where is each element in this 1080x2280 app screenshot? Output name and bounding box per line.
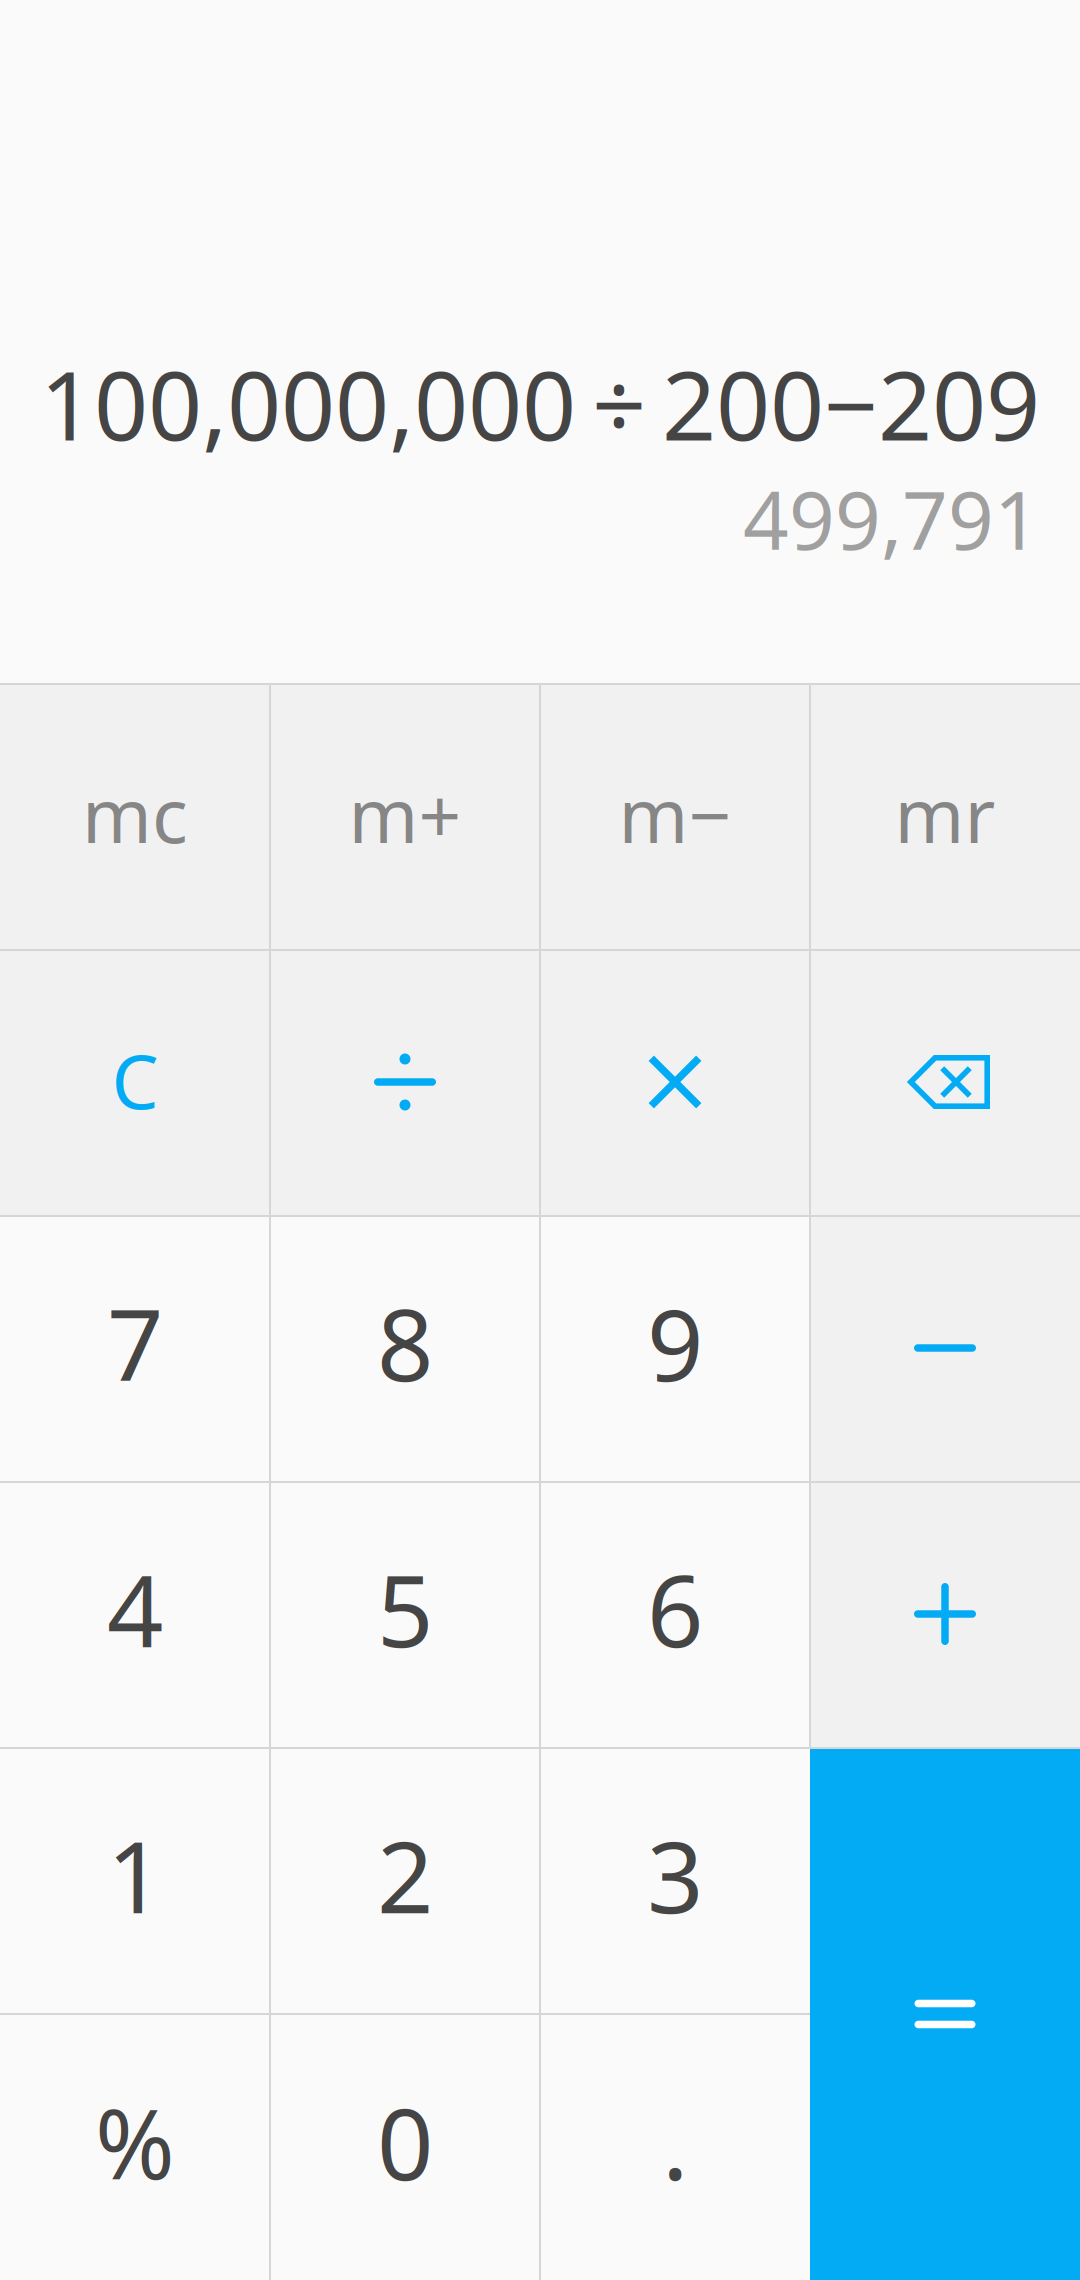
button[interactable]: m+ <box>270 683 540 949</box>
button[interactable]: 3 <box>540 1747 810 2013</box>
button[interactable]: Multiply <box>540 949 810 1215</box>
staticText: C <box>111 1030 158 1130</box>
button[interactable]: . <box>540 2013 810 2280</box>
button[interactable]: 0 <box>270 2013 540 2280</box>
staticText: 1 <box>107 1809 163 1940</box>
staticText: 100,000,000 ÷ 200−209 <box>40 341 1040 467</box>
staticText: 6 <box>647 1543 703 1674</box>
staticText: . <box>662 2076 688 2207</box>
staticText: m− <box>618 764 731 864</box>
button[interactable]: 1 <box>0 1747 270 2013</box>
button[interactable]: 4 <box>0 1481 270 1747</box>
staticText: 0 <box>377 2076 433 2207</box>
staticText: % <box>95 2078 175 2206</box>
staticText: 7 <box>107 1277 163 1408</box>
staticText: 5 <box>377 1543 433 1674</box>
button[interactable]: 8 <box>270 1215 540 1481</box>
staticText: 2 <box>377 1809 433 1940</box>
button[interactable]: 6 <box>540 1481 810 1747</box>
button[interactable]: Plus <box>810 1481 1080 1747</box>
button[interactable]: % <box>0 2013 270 2280</box>
button[interactable]: 2 <box>270 1747 540 2013</box>
staticText: 9 <box>647 1277 703 1408</box>
staticText: mr <box>894 764 995 864</box>
button[interactable]: mr <box>810 683 1080 949</box>
staticText: mc <box>82 764 188 864</box>
staticText: 499,791 <box>743 466 1040 572</box>
button[interactable]: C <box>0 949 270 1215</box>
button[interactable]: Backspace <box>810 949 1080 1215</box>
staticText: 4 <box>107 1543 163 1674</box>
staticText: 3 <box>647 1809 703 1940</box>
button[interactable]: Minus <box>810 1215 1080 1481</box>
button[interactable]: 5 <box>270 1481 540 1747</box>
staticText: m+ <box>348 764 461 864</box>
button[interactable]: 7 <box>0 1215 270 1481</box>
button[interactable]: Divide <box>270 949 540 1215</box>
button[interactable]: Equals <box>810 1747 1080 2280</box>
button[interactable]: 9 <box>540 1215 810 1481</box>
staticText: 8 <box>377 1277 433 1408</box>
button[interactable]: mc <box>0 683 270 949</box>
button[interactable]: m− <box>540 683 810 949</box>
